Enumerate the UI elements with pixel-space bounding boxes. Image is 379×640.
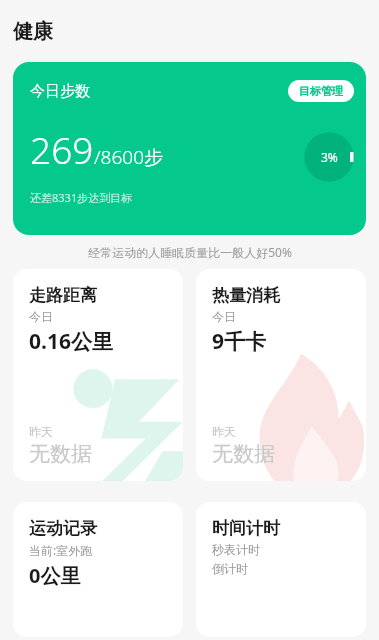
staticText: 无数据 [212,441,275,467]
staticText: 倒计时 [212,561,248,576]
staticText: 今日步数 [30,82,90,101]
staticText: 0公里 [29,562,81,589]
staticText: 当前:室外跑 [29,542,93,558]
button[interactable]: 时间计时 [196,502,366,637]
staticText: 269 [30,124,94,174]
staticText: 运动记录 [29,518,97,539]
staticText: 走路距离 [29,285,97,306]
staticText: 昨天 [29,424,53,439]
staticText: 3% [321,149,338,165]
staticText: 0.16公里 [29,327,113,356]
staticText: 无数据 [29,441,92,467]
staticText: 经常运动的人睡眠质量比一般人好50% [88,244,292,260]
button[interactable]: 走路距离 [13,269,183,481]
staticText: /8600步 [94,144,163,170]
staticText: 还差8331步达到目标 [30,190,133,205]
button[interactable]: 今日步数 [13,62,366,235]
staticText: 昨天 [212,424,236,439]
staticText: 时间计时 [212,518,280,539]
staticText: 9千卡 [212,327,267,356]
staticText: 目标管理 [299,84,343,98]
staticText: 热量消耗 [212,285,280,306]
button[interactable]: 热量消耗 [196,269,366,481]
button[interactable]: 运动记录 [13,502,183,637]
button[interactable]: 目标管理 [288,80,354,102]
staticText: 今日 [212,309,236,324]
staticText: 秒表计时 [212,542,260,557]
button[interactable]: 步数进度 3% [301,129,357,185]
staticText: 健康 [13,19,53,44]
staticText: 今日 [29,309,53,324]
